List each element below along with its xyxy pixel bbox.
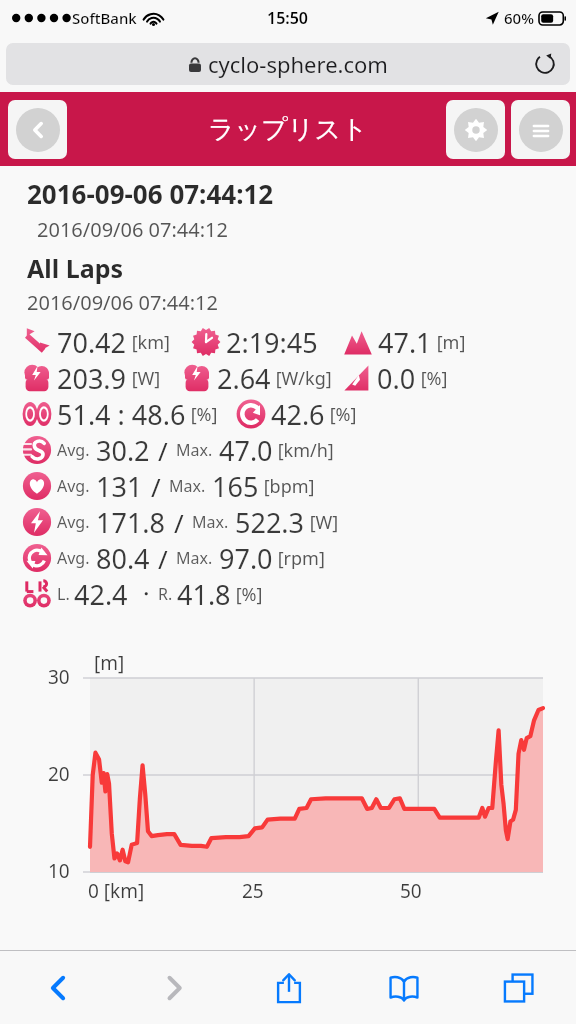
staticText: R. [158, 583, 173, 605]
staticText: [m] [432, 330, 466, 355]
button[interactable]: Forward [116, 951, 231, 1024]
button[interactable]: Back [8, 100, 67, 159]
staticText: Max. [176, 547, 213, 569]
staticText: 70.42 [57, 324, 127, 360]
staticText: 2016/09/06 07:44:12 [37, 216, 228, 243]
staticText: 0 [km] [88, 878, 145, 904]
button[interactable]: Back [0, 951, 116, 1024]
staticText: 51.4 : 48.6 [57, 396, 186, 432]
staticText: 2016/09/06 07:44:12 [27, 289, 218, 316]
staticText: [%] [231, 582, 263, 607]
button[interactable]: Reload [530, 49, 560, 79]
staticText: 131 [96, 468, 143, 504]
staticText: 50 [400, 878, 422, 904]
staticText: 47.1 [378, 324, 432, 360]
button[interactable]: Share [231, 951, 346, 1024]
staticText: 30 [48, 664, 70, 690]
staticText: / [151, 469, 161, 504]
staticText: [%] [186, 402, 218, 427]
staticText: 2016-09-06 07:44:12 [27, 176, 274, 211]
staticText: / [158, 433, 168, 468]
staticText: L. [57, 583, 70, 605]
staticText: 42.4 [74, 576, 128, 612]
staticText: 0.0 [377, 360, 416, 396]
staticText: 15:50 [267, 7, 309, 29]
staticText: [km/h] [273, 438, 334, 463]
staticText: [rpm] [273, 546, 325, 571]
staticText: 47.0 [219, 432, 273, 468]
staticText: 165 [212, 468, 259, 504]
staticText: cyclo-sphere.com [208, 49, 388, 79]
staticText: [km] [127, 330, 170, 355]
staticText: [W] [305, 510, 339, 535]
staticText: / [158, 541, 168, 576]
staticText: All Laps [27, 251, 124, 285]
staticText: Avg. [57, 547, 90, 569]
staticText: 171.8 [96, 504, 166, 540]
staticText: 203.9 [57, 360, 127, 396]
staticText: Avg. [57, 475, 90, 497]
button[interactable]: Menu [511, 100, 570, 159]
staticText: ・ [136, 582, 156, 607]
staticText: 2:19:45 [226, 324, 318, 360]
staticText: 41.8 [177, 576, 231, 612]
staticText: 25 [242, 878, 264, 904]
staticText: Avg. [57, 439, 90, 461]
staticText: [bpm] [259, 474, 315, 499]
staticText: 42.6 [271, 396, 325, 432]
staticText: [m] [94, 650, 125, 676]
staticText: Max. [169, 475, 206, 497]
staticText: 2.64 [217, 360, 271, 396]
staticText: ラップリスト [208, 113, 368, 146]
button[interactable]: Settings [446, 100, 505, 159]
staticText: [%] [416, 366, 448, 391]
staticText: SoftBank [72, 8, 137, 28]
staticText: Max. [176, 439, 213, 461]
staticText: 20 [48, 761, 70, 787]
staticText: 522.3 [235, 504, 305, 540]
button[interactable]: Tabs [461, 951, 576, 1024]
staticText: Max. [192, 511, 229, 533]
staticText: [%] [325, 402, 357, 427]
staticText: 60% [504, 8, 534, 28]
staticText: / [174, 505, 184, 540]
staticText: 80.4 [96, 540, 150, 576]
staticText: Avg. [57, 511, 90, 533]
staticText: 97.0 [219, 540, 273, 576]
staticText: [W/kg] [271, 366, 332, 391]
button[interactable]: cyclo-sphere.com [6, 43, 570, 85]
staticText: [W] [127, 366, 161, 391]
staticText: 30.2 [96, 432, 150, 468]
button[interactable]: Bookmarks [346, 951, 461, 1024]
staticText: 10 [48, 858, 70, 884]
